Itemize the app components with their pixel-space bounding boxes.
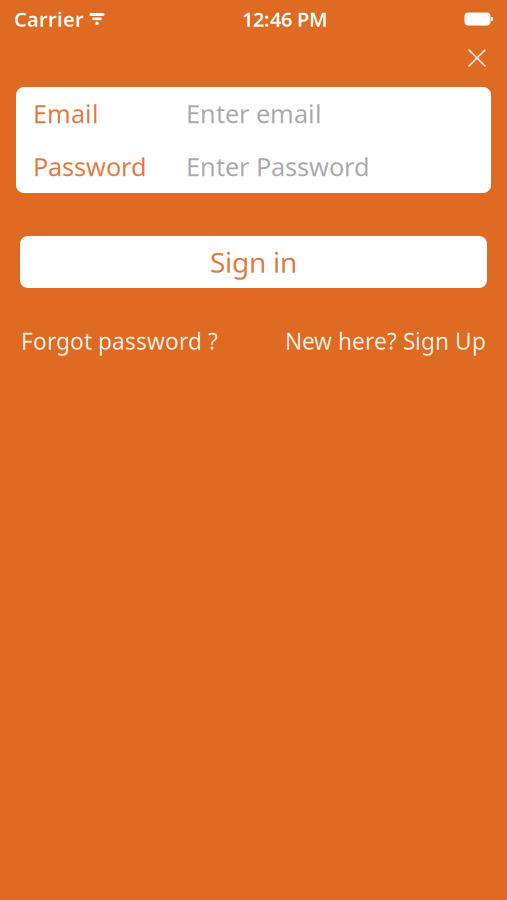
- staticText: Enter email: [186, 97, 322, 130]
- staticText: New here? Sign Up: [285, 326, 486, 356]
- button[interactable]: Forgot password ?: [21, 326, 218, 356]
- staticText: Email: [33, 97, 99, 130]
- button[interactable]: New here? Sign Up: [285, 326, 486, 356]
- staticText: 12:46 PM: [242, 6, 328, 32]
- staticText: Forgot password ?: [21, 326, 218, 356]
- staticText: Enter Password: [186, 150, 370, 183]
- button[interactable]: Sign in: [20, 236, 487, 288]
- staticText: Password: [33, 150, 147, 183]
- staticText: Sign in: [210, 243, 297, 281]
- button[interactable]: Close: [455, 36, 499, 80]
- staticText: Carrier: [14, 6, 84, 32]
